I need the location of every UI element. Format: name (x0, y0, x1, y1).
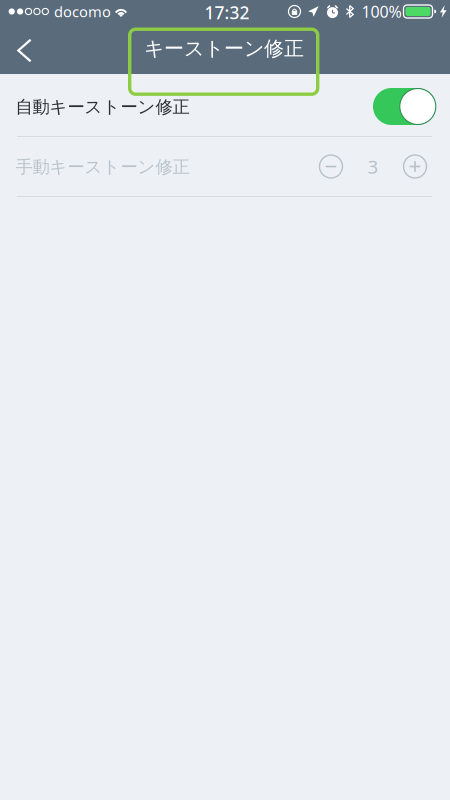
button[interactable]: 自動キーストーン修正 (373, 86, 435, 123)
button[interactable]: 値を減らす (319, 146, 343, 186)
staticText: 手動キーストーン修正 (15, 156, 189, 178)
staticText: 自動キーストーン修正 (15, 96, 189, 118)
staticText: キーストーン修正 (144, 36, 304, 61)
button[interactable]: 値を増やす (403, 146, 427, 186)
staticText: 17:32 (204, 1, 249, 24)
button[interactable]: 戻る (0, 23, 54, 74)
staticText: 3 (367, 154, 378, 179)
staticText: 100% (361, 1, 401, 22)
staticText: docomo (54, 2, 111, 21)
